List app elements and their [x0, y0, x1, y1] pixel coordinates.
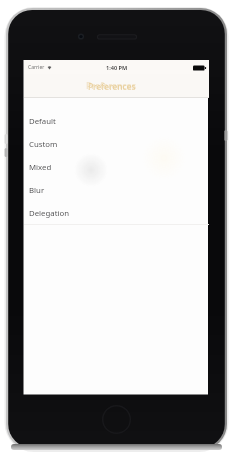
staticText: Default	[29, 116, 56, 127]
button[interactable]: Mixed	[24, 156, 209, 179]
staticText: Preferences	[86, 80, 136, 92]
staticText: Preferences	[88, 81, 136, 92]
button[interactable]: Blur	[24, 179, 209, 202]
staticText: Carrier	[28, 64, 45, 71]
staticText: Blur	[29, 185, 45, 196]
staticText: Custom	[29, 139, 58, 150]
staticText: 1:40 PM	[106, 64, 128, 72]
staticText: Delegation	[29, 208, 70, 219]
button[interactable]: Custom	[24, 133, 209, 156]
staticText: Mixed	[29, 162, 52, 173]
button[interactable]: Default	[24, 110, 209, 133]
button[interactable]: Delegation	[24, 202, 209, 225]
